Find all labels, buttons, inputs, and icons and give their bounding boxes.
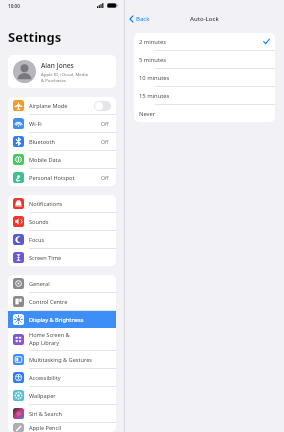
staticText: Bluetooth <box>29 138 55 146</box>
staticText: Auto-Lock <box>190 15 219 23</box>
button[interactable]: 10 minutes <box>134 69 275 86</box>
staticText: Multitasking & Gestures <box>29 356 93 364</box>
staticText: Mobile Data <box>29 156 61 164</box>
staticText: Wi-Fi <box>29 120 42 128</box>
staticText: Control Centre <box>29 298 68 306</box>
button[interactable]: Apple Pencil <box>8 423 116 432</box>
staticText: Notifications <box>29 200 63 208</box>
button[interactable]: Focus <box>8 231 116 248</box>
staticText: Alan Jones <box>41 61 74 70</box>
staticText: App Library <box>29 339 60 347</box>
button[interactable]: Bluetooth <box>8 133 116 150</box>
button[interactable]: Screen Time <box>8 249 116 266</box>
staticText: Wallpaper <box>29 392 56 400</box>
button[interactable]: Accessibility <box>8 369 116 386</box>
button[interactable]: 15 minutes <box>134 87 275 104</box>
button[interactable]: Siri & Search <box>8 405 116 422</box>
staticText: Focus <box>29 236 45 244</box>
staticText: Off <box>101 138 109 145</box>
button[interactable]: Multitasking & Gestures <box>8 351 116 368</box>
button[interactable]: General <box>8 275 116 292</box>
button[interactable]: Never <box>134 105 275 122</box>
staticText: & Purchases <box>41 77 66 83</box>
button[interactable]: 2 minutes <box>134 33 275 50</box>
staticText: Siri & Search <box>29 410 62 418</box>
staticText: Settings <box>8 28 62 46</box>
button[interactable]: 5 minutes <box>134 51 275 68</box>
staticText: 10 minutes <box>139 74 270 82</box>
staticText: Airplane Mode <box>29 102 68 110</box>
staticText: 10:00 <box>8 3 20 9</box>
staticText: Personal Hotspot <box>29 174 75 182</box>
button[interactable]: Wi-Fi <box>8 115 116 132</box>
button[interactable]: Display & Brightness <box>8 311 116 328</box>
staticText: Never <box>139 110 270 118</box>
staticText: General <box>29 280 50 288</box>
button[interactable]: Alan Jones <box>8 55 116 88</box>
staticText: Back <box>136 15 150 23</box>
staticText: Screen Time <box>29 254 62 262</box>
button[interactable]: Sounds <box>8 213 116 230</box>
staticText: Accessibility <box>29 374 61 382</box>
staticText: 5 minutes <box>139 56 270 64</box>
staticText: 15 minutes <box>139 92 270 100</box>
staticText: Apple Pencil <box>29 424 62 432</box>
button[interactable]: Airplane Mode <box>8 97 116 114</box>
button[interactable]: Wallpaper <box>8 387 116 404</box>
staticText: Display & Brightness <box>29 316 84 324</box>
button[interactable]: Mobile Data <box>8 151 116 168</box>
button[interactable]: Control Centre <box>8 293 116 310</box>
button[interactable]: Back <box>129 15 150 23</box>
button[interactable]: Airplane Mode toggle <box>94 101 111 111</box>
staticText: Off <box>101 174 109 181</box>
staticText: 2 minutes <box>139 38 263 46</box>
staticText: Off <box>101 120 109 127</box>
staticText: Sounds <box>29 218 49 226</box>
staticText: Home Screen & <box>29 331 70 339</box>
staticText: Apple ID, iCloud, Media <box>41 71 88 77</box>
button[interactable]: Home Screen & <box>8 328 116 350</box>
button[interactable]: Notifications <box>8 195 116 212</box>
button[interactable]: Personal Hotspot <box>8 169 116 186</box>
